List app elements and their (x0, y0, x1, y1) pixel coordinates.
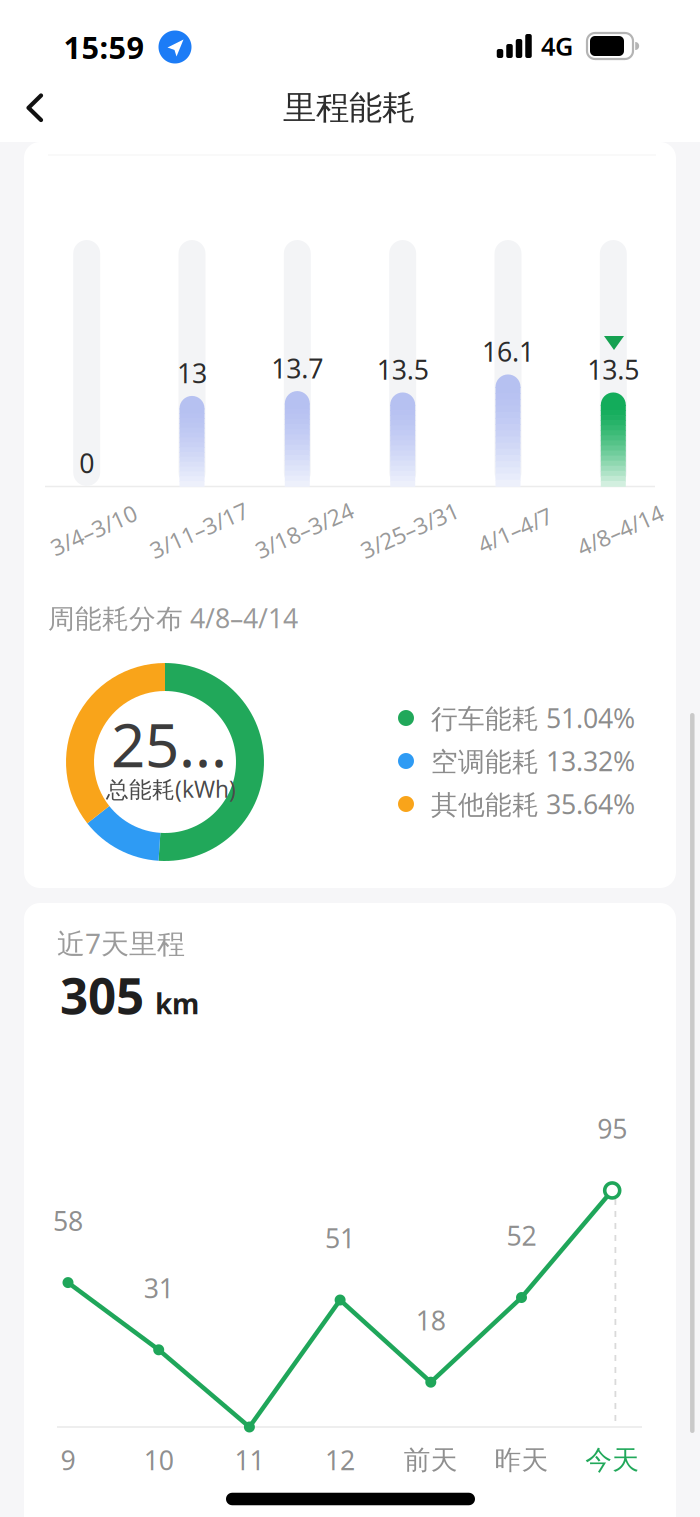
staticText: 3/18–3/24 (252, 515, 357, 545)
staticText: 13.5 (377, 352, 429, 387)
staticText: 58 (53, 1203, 83, 1238)
staticText: 4/1–4/7 (475, 515, 554, 545)
staticText: 51 (325, 1220, 355, 1256)
staticText: 3/4–3/10 (48, 515, 140, 545)
staticText: 13.5 (587, 352, 639, 387)
staticText: 10 (144, 1442, 174, 1478)
staticText: 18 (416, 1302, 446, 1338)
staticText: 空调能耗 13.32% (431, 743, 635, 779)
staticText: 3/11–3/17 (146, 515, 251, 545)
staticText: 305 (60, 962, 144, 1028)
staticText: 里程能耗 (283, 87, 415, 128)
staticText: 前天 (404, 1444, 458, 1476)
staticText: km (155, 985, 199, 1022)
staticText: 9 (60, 1442, 75, 1478)
button[interactable] (6, 78, 66, 138)
staticText: 4G (541, 29, 573, 63)
staticText: 昨天 (494, 1444, 548, 1476)
staticText: 95 (597, 1111, 627, 1146)
staticText: 11 (234, 1442, 264, 1478)
staticText: 13.7 (271, 350, 323, 386)
staticText: 今天 (585, 1444, 639, 1476)
staticText: 3/25–3/31 (357, 515, 462, 545)
staticText: 52 (506, 1218, 536, 1253)
staticText: 31 (144, 1270, 174, 1305)
staticText: 其他能耗 35.64% (431, 786, 635, 822)
staticText: 近7天里程 (57, 924, 185, 962)
staticText: 总能耗(kWh) (106, 774, 236, 804)
staticText: 行车能耗 51.04% (431, 700, 635, 736)
staticText: 0 (79, 445, 94, 481)
staticText: 15:59 (63, 27, 144, 67)
staticText: 25... (111, 704, 227, 784)
staticText: 周能耗分布 4/8–4/14 (48, 600, 298, 636)
staticText: 16.1 (482, 334, 534, 369)
staticText: 13 (177, 355, 207, 391)
staticText: 4/8–4/14 (574, 515, 666, 545)
staticText: 12 (325, 1442, 355, 1478)
